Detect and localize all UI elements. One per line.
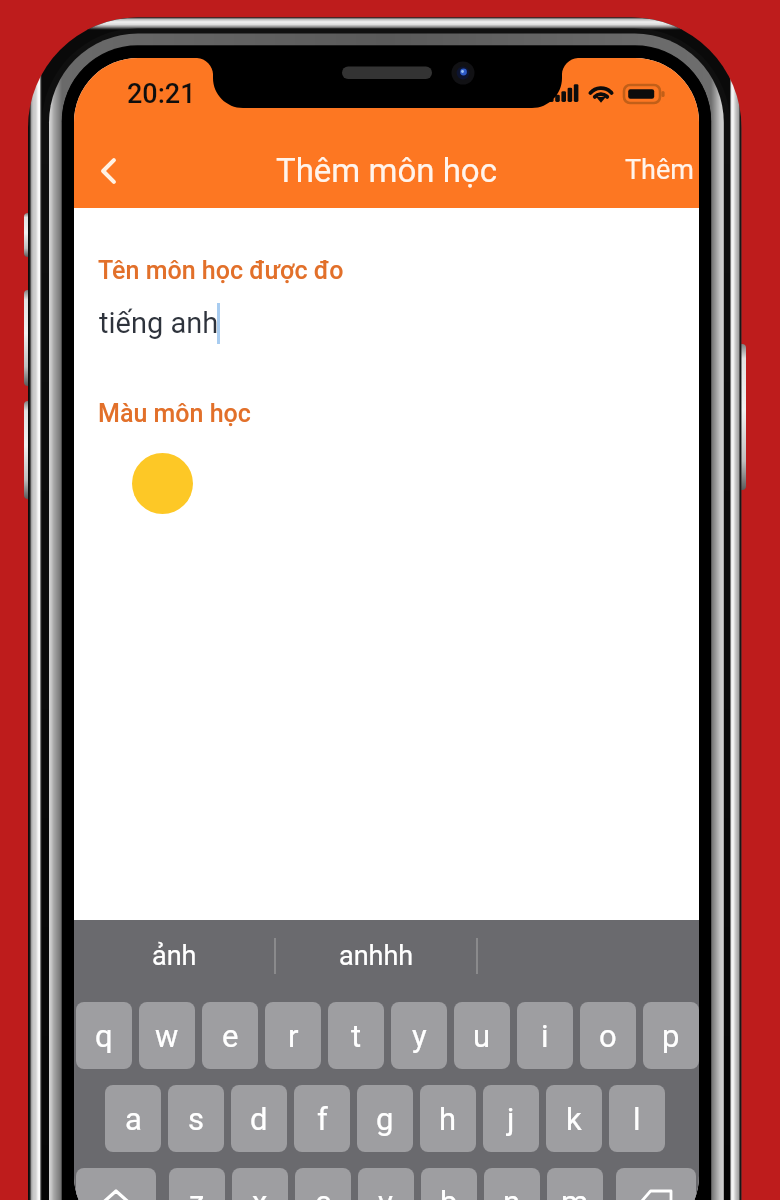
button[interactable]: Chọn màu: [132, 453, 193, 514]
button[interactable]: n: [484, 1168, 540, 1200]
button[interactable]: Backspace: [616, 1168, 696, 1200]
staticText: l: [633, 1101, 641, 1137]
staticText: v: [378, 1184, 394, 1200]
staticText: b: [440, 1184, 458, 1200]
staticText: w: [155, 1018, 179, 1054]
button[interactable]: s: [168, 1085, 224, 1152]
button[interactable]: ảnh: [74, 920, 274, 992]
button[interactable]: Shift: [76, 1168, 156, 1200]
button[interactable]: v: [358, 1168, 414, 1200]
button[interactable]: x: [232, 1168, 288, 1200]
staticText: ảnh: [152, 940, 197, 972]
staticText: Màu môn học: [98, 399, 251, 428]
staticText: o: [599, 1018, 617, 1054]
staticText: tiếng anh: [99, 306, 219, 340]
staticText: y: [412, 1018, 427, 1054]
staticText: 20:21: [127, 78, 196, 110]
button[interactable]: y: [391, 1002, 447, 1069]
button[interactable]: Thêm: [611, 142, 699, 198]
button[interactable]: i: [517, 1002, 573, 1069]
staticText: r: [288, 1018, 299, 1054]
button[interactable]: g: [357, 1085, 413, 1152]
staticText: u: [473, 1018, 491, 1054]
staticText: h: [439, 1101, 457, 1137]
staticText: Thêm môn học: [276, 151, 497, 190]
button[interactable]: j: [483, 1085, 539, 1152]
button[interactable]: d: [231, 1085, 287, 1152]
button[interactable]: c: [295, 1168, 351, 1200]
button[interactable]: f: [294, 1085, 350, 1152]
staticText: e: [222, 1018, 239, 1054]
staticText: k: [566, 1101, 582, 1137]
staticText: d: [250, 1101, 268, 1137]
staticText: f: [317, 1101, 328, 1137]
staticText: j: [507, 1101, 515, 1137]
button[interactable]: k: [546, 1085, 602, 1152]
button[interactable]: r: [265, 1002, 321, 1069]
button[interactable]: t: [328, 1002, 384, 1069]
button[interactable]: l: [609, 1085, 665, 1152]
staticText: p: [662, 1018, 680, 1054]
staticText: a: [125, 1101, 142, 1137]
staticText: m: [561, 1184, 589, 1200]
button[interactable]: q: [76, 1002, 132, 1069]
button[interactable]: Back: [75, 134, 141, 208]
staticText: x: [252, 1184, 268, 1200]
staticText: Tên môn học được đo: [98, 256, 344, 285]
staticText: s: [188, 1101, 204, 1137]
button[interactable]: b: [421, 1168, 477, 1200]
staticText: c: [315, 1184, 332, 1200]
staticText: z: [189, 1184, 205, 1200]
staticText: anhhh: [339, 940, 414, 972]
staticText: q: [95, 1018, 113, 1054]
staticText: n: [503, 1184, 521, 1200]
button[interactable]: u: [454, 1002, 510, 1069]
button[interactable]: m: [547, 1168, 603, 1200]
staticText: g: [376, 1101, 394, 1137]
button[interactable]: o: [580, 1002, 636, 1069]
staticText: t: [351, 1018, 362, 1054]
button[interactable]: z: [169, 1168, 225, 1200]
staticText: i: [541, 1018, 549, 1054]
button[interactable]: h: [420, 1085, 476, 1152]
button[interactable]: p: [643, 1002, 699, 1069]
button[interactable]: w: [139, 1002, 195, 1069]
staticText: Thêm: [625, 154, 694, 186]
button[interactable]: a: [105, 1085, 161, 1152]
button[interactable]: anhhh: [276, 920, 476, 992]
button[interactable]: e: [202, 1002, 258, 1069]
